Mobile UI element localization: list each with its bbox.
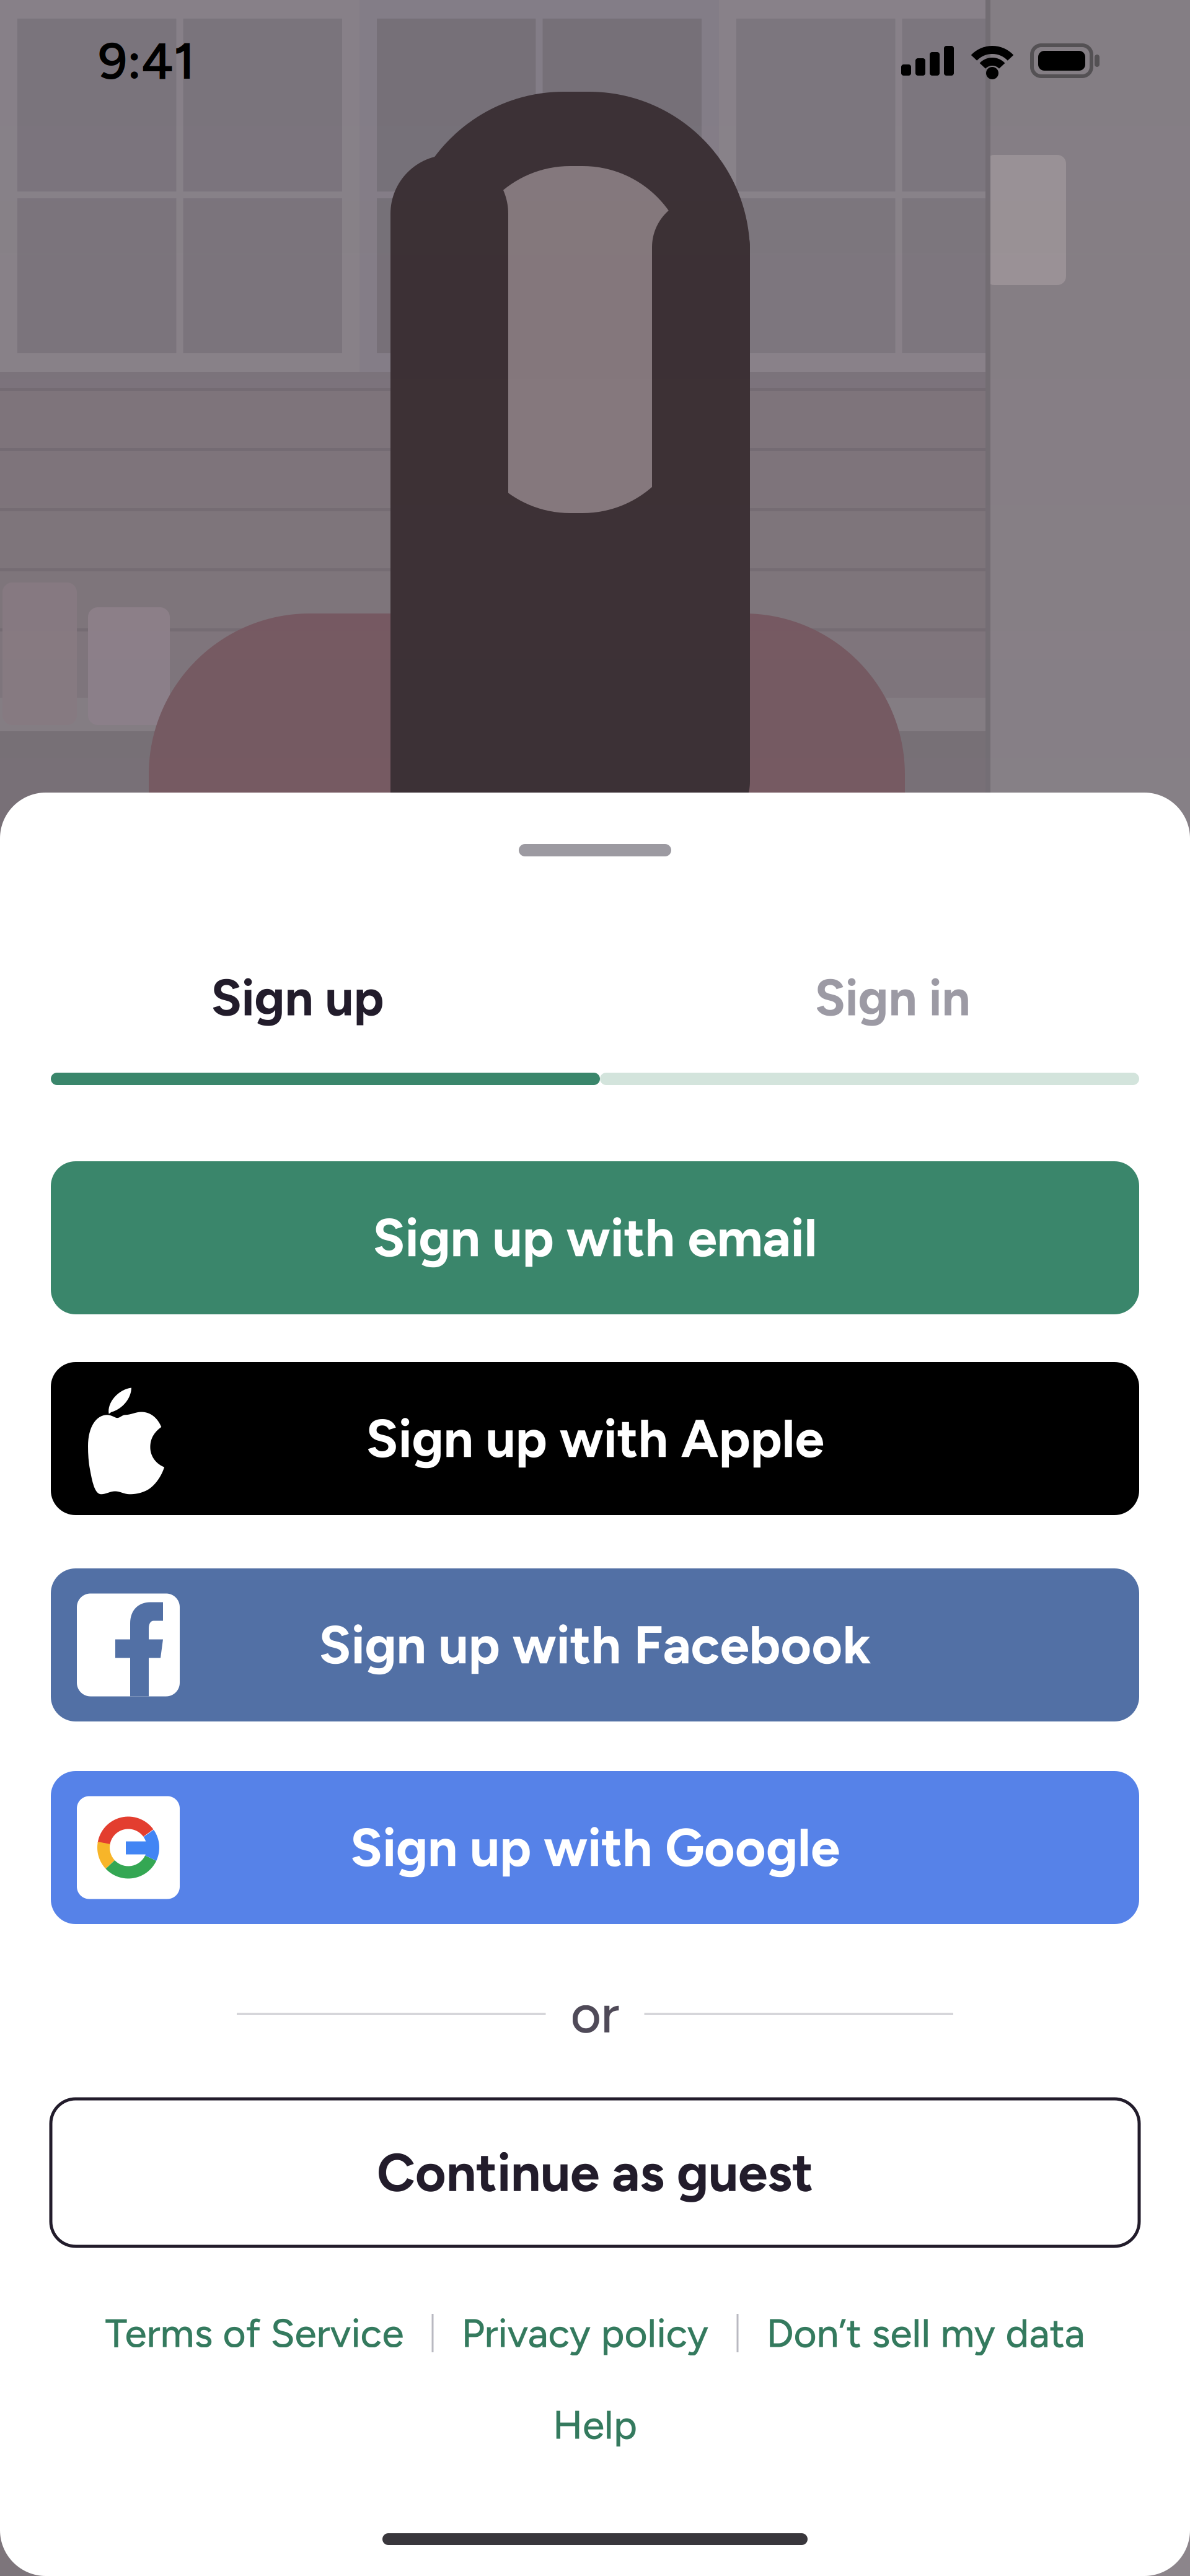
button[interactable]: Sign up with Apple (51, 1362, 1139, 1515)
staticText: Sign in (815, 967, 970, 1028)
staticText: Sign up with email (373, 1206, 817, 1270)
staticText: Privacy policy (461, 2309, 709, 2357)
button[interactable]: Sign up with Google (51, 1771, 1139, 1924)
staticText: Sign up with Apple (366, 1407, 824, 1470)
staticText: 9:41 (98, 30, 195, 91)
staticText: or (571, 1982, 619, 2046)
staticText: Sign up with Facebook (319, 1613, 871, 1677)
staticText: Terms of Service (105, 2309, 404, 2357)
button[interactable]: Help (553, 2400, 637, 2450)
button[interactable]: Sign up with Facebook (51, 1568, 1139, 1721)
staticText: Sign up with Google (350, 1816, 840, 1879)
button[interactable]: Don’t sell my data (766, 2308, 1085, 2358)
button[interactable]: Sign in (595, 971, 1190, 1024)
button[interactable]: Continue as guest (51, 2099, 1139, 2246)
staticText: Don’t sell my data (766, 2309, 1085, 2357)
button[interactable]: Sign up (0, 971, 595, 1024)
staticText: Continue as guest (377, 2141, 813, 2204)
staticText: Sign up (211, 967, 384, 1028)
button[interactable]: Terms of Service (105, 2308, 404, 2358)
staticText: Help (553, 2401, 637, 2449)
button[interactable]: Privacy policy (461, 2308, 709, 2358)
button[interactable]: Sign up with email (51, 1161, 1139, 1314)
